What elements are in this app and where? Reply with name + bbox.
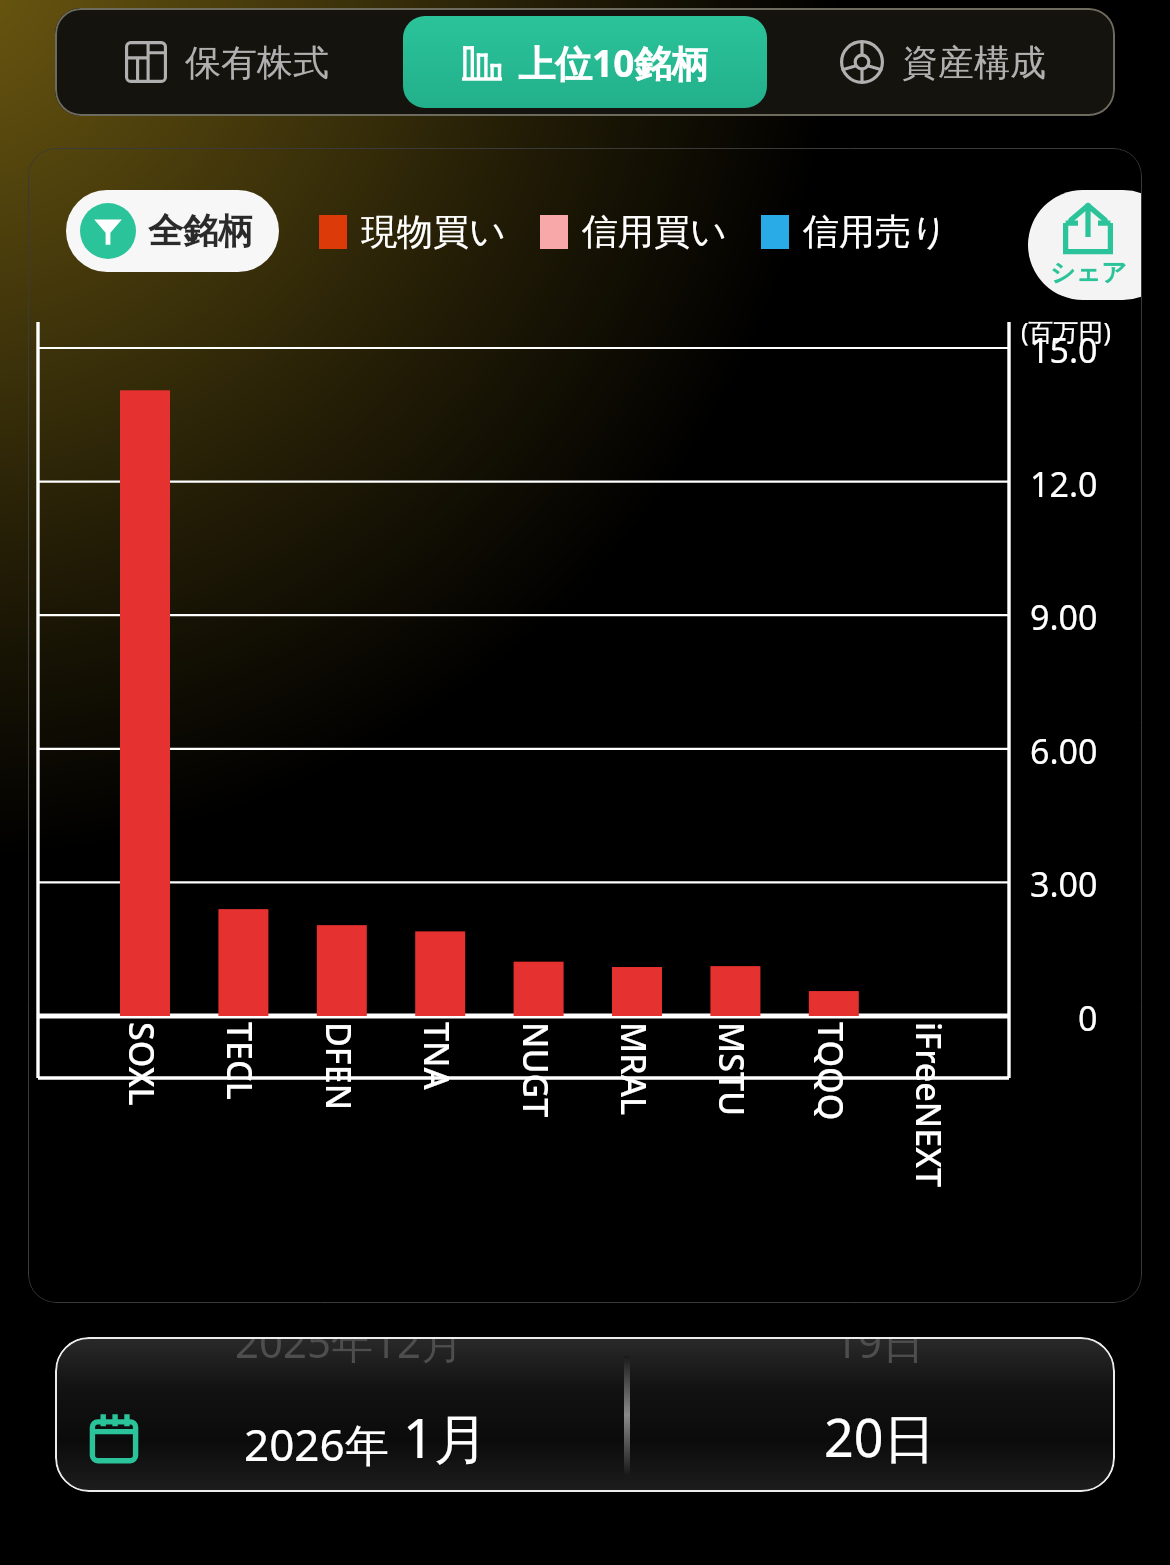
- button[interactable]: 資産構成: [771, 8, 1115, 116]
- button[interactable]: 2025年12月: [55, 1337, 1115, 1492]
- staticText: 3.00: [1030, 861, 1098, 907]
- staticText: 9.00: [1030, 594, 1098, 640]
- staticText: (百万円): [1021, 314, 1112, 348]
- staticText: 12.0: [1030, 461, 1098, 507]
- staticText: 15.0: [1030, 327, 1098, 373]
- staticText: TNA: [420, 1022, 460, 1090]
- staticText: iFreeNEXTFA: [912, 1022, 952, 1202]
- staticText: 2025年12月: [235, 1337, 464, 1370]
- staticText: 20日: [824, 1401, 936, 1472]
- staticText: 6.00: [1030, 728, 1098, 774]
- staticText: 信用買い: [582, 209, 727, 254]
- staticText: DFEN: [322, 1022, 362, 1111]
- staticText: MRAL: [617, 1022, 657, 1116]
- staticText: 1月: [389, 1400, 488, 1474]
- staticText: 19日: [834, 1337, 925, 1370]
- staticText: TECL: [223, 1022, 263, 1100]
- staticText: 0: [1078, 995, 1098, 1041]
- button[interactable]: 上位10銘柄: [403, 16, 767, 108]
- staticText: 2026年: [244, 1414, 389, 1474]
- button[interactable]: シェア: [1028, 190, 1142, 300]
- staticText: 保有株式: [185, 40, 329, 85]
- staticText: NUGT: [519, 1022, 559, 1118]
- staticText: 上位10銘柄: [518, 37, 709, 88]
- staticText: 現物買い: [361, 209, 506, 254]
- staticText: シェア: [1050, 257, 1127, 288]
- staticText: 資産構成: [902, 40, 1046, 85]
- button[interactable]: 信用買い: [540, 209, 727, 254]
- button[interactable]: 保有株式: [55, 8, 399, 116]
- staticText: SOXL: [125, 1022, 165, 1106]
- button[interactable]: 現物買い: [319, 209, 506, 254]
- button[interactable]: 全銘柄: [66, 190, 279, 272]
- button[interactable]: 信用売り: [761, 209, 948, 254]
- staticText: 全銘柄: [148, 209, 253, 253]
- staticText: TQQQ: [814, 1022, 854, 1121]
- staticText: MSTU: [715, 1022, 755, 1117]
- staticText: 信用売り: [803, 209, 948, 254]
